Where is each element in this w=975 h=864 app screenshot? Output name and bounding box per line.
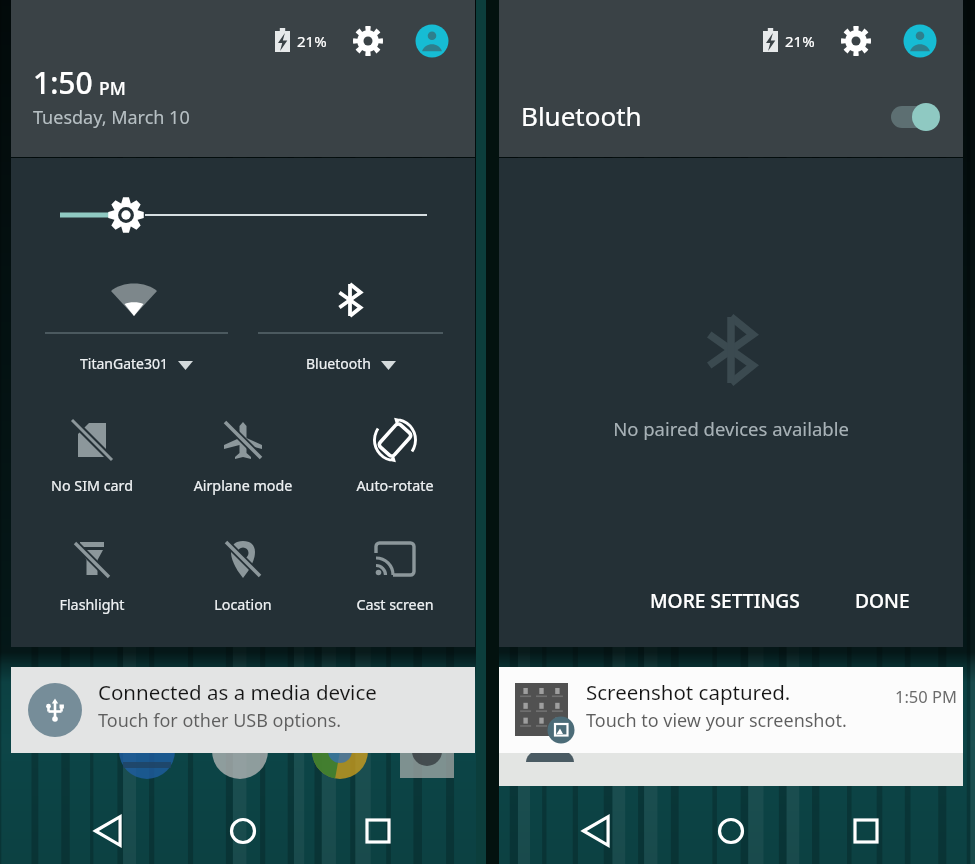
- staticText: TitanGate301: [80, 354, 168, 373]
- button[interactable]: Home: [671, 790, 791, 864]
- button[interactable]: Flashlight: [18, 525, 166, 617]
- button[interactable]: Auto-rotate: [321, 406, 469, 498]
- staticText: PM: [99, 76, 126, 100]
- button[interactable]: Brightness: [11, 158, 475, 238]
- staticText: Auto-rotate: [321, 476, 469, 495]
- button[interactable]: No SIM card: [18, 406, 166, 498]
- staticText: Location: [169, 595, 317, 614]
- button[interactable]: Screenshot captured.: [499, 667, 963, 753]
- button[interactable]: Airplane mode: [169, 406, 317, 498]
- staticText: Flashlight: [18, 595, 166, 614]
- button[interactable]: TitanGate301: [33, 258, 240, 380]
- staticText: Airplane mode: [169, 476, 317, 495]
- staticText: MORE SETTINGS: [650, 587, 800, 613]
- button[interactable]: Recents: [806, 790, 926, 864]
- staticText: Bluetooth: [521, 98, 642, 133]
- staticText: 21%: [785, 31, 815, 51]
- staticText: Touch to view your screenshot.: [586, 708, 847, 733]
- button[interactable]: Cast screen: [321, 525, 469, 617]
- button[interactable]: DONE: [843, 575, 922, 625]
- button[interactable]: Home: [183, 790, 303, 864]
- staticText: DONE: [855, 587, 910, 613]
- button[interactable]: MORE SETTINGS: [638, 575, 812, 625]
- staticText: No SIM card: [18, 476, 166, 495]
- button[interactable]: Location: [169, 525, 317, 617]
- staticText: Touch for other USB options.: [98, 708, 342, 733]
- button[interactable]: Recents: [318, 790, 438, 864]
- staticText: Tuesday, March 10: [33, 105, 190, 130]
- button[interactable]: Back: [55, 790, 175, 864]
- staticText: 1:50: [33, 62, 93, 103]
- button[interactable]: Back: [543, 790, 663, 864]
- staticText: Bluetooth: [306, 354, 371, 373]
- staticText: 21%: [297, 31, 327, 51]
- staticText: No paired devices available: [499, 416, 963, 441]
- staticText: 1:50 PM: [895, 685, 957, 707]
- staticText: Connected as a media device: [98, 678, 377, 706]
- button[interactable]: Bluetooth toggle: [871, 96, 941, 138]
- button[interactable]: Bluetooth: [246, 258, 455, 380]
- button[interactable]: Connected as a media device: [11, 667, 475, 753]
- staticText: Screenshot captured.: [586, 678, 791, 706]
- staticText: Cast screen: [321, 595, 469, 614]
